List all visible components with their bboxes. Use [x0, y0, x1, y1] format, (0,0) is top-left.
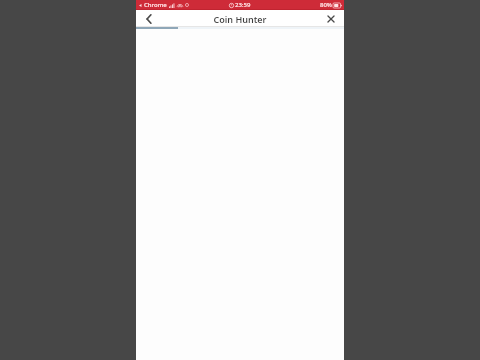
- staticText: 23:59: [235, 1, 251, 9]
- staticText: Coin Hunter: [213, 13, 267, 25]
- button[interactable]: Back: [136, 10, 162, 27]
- button[interactable]: Close: [318, 10, 344, 27]
- staticText: Chrome: [144, 1, 167, 9]
- staticText: 80%: [320, 1, 332, 9]
